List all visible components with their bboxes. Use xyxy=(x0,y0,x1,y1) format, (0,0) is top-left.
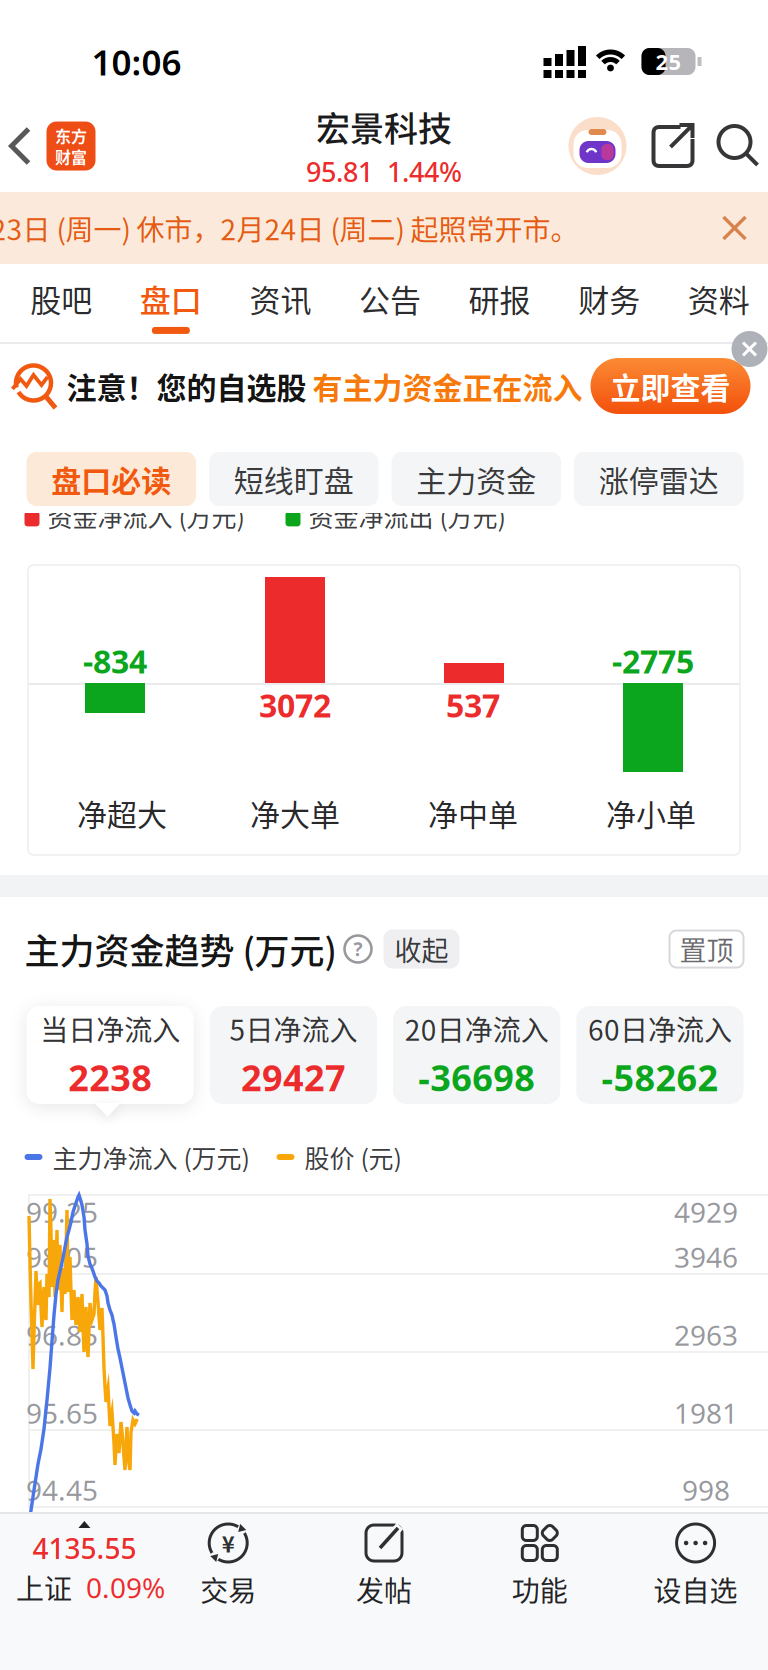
button[interactable]: ¥ xyxy=(150,1514,306,1609)
staticText: 主力资金 xyxy=(416,457,536,501)
button[interactable]: 4135.55 xyxy=(0,1514,150,1608)
staticText: -2775 xyxy=(612,639,694,683)
staticText: 主力净流入 (万元) xyxy=(52,1139,249,1175)
button[interactable]: 20日净流入 xyxy=(393,1006,560,1104)
staticText: 2238 xyxy=(68,1053,152,1102)
staticText: 1.44% xyxy=(387,153,462,190)
staticText: 宏景科技 xyxy=(316,102,452,151)
staticText: 4929 xyxy=(674,1193,738,1231)
staticText: 资金净流出 (万元) xyxy=(308,498,505,534)
staticText: 注意！您的自选股 xyxy=(66,364,306,408)
button[interactable]: 股吧 xyxy=(6,276,116,334)
button[interactable]: 发帖 xyxy=(306,1514,462,1609)
button[interactable]: 功能 xyxy=(462,1514,618,1609)
button[interactable]: 东方财富 xyxy=(34,121,95,170)
button[interactable]: 资讯 xyxy=(226,276,335,334)
staticText: 盘口必读 xyxy=(51,457,171,501)
staticText: 95.81 xyxy=(306,153,373,190)
staticText: 股价 (元) xyxy=(304,1139,401,1175)
staticText: 25 xyxy=(655,46,681,76)
button[interactable]: 关闭公告 xyxy=(723,217,768,239)
staticText: 5日净流入 xyxy=(229,1008,357,1049)
button[interactable]: 短线盯盘 xyxy=(209,452,378,506)
staticText: 收起 xyxy=(394,929,448,969)
staticText: 净超大 xyxy=(77,791,167,835)
button[interactable]: Search xyxy=(695,123,768,169)
staticText: 98.05 xyxy=(26,1238,98,1276)
button[interactable]: 置顶 xyxy=(669,930,768,967)
button[interactable]: 公告 xyxy=(335,276,445,334)
staticText: 公告 xyxy=(359,276,421,321)
staticText: 净小单 xyxy=(606,791,696,835)
staticText: 3072 xyxy=(259,683,331,727)
staticText: ¥ xyxy=(222,1527,235,1559)
staticText: 净大单 xyxy=(250,791,340,835)
staticText: 99.25 xyxy=(26,1193,98,1231)
staticText: ? xyxy=(353,936,362,962)
button[interactable]: 资料 xyxy=(664,276,768,334)
button[interactable]: 主力资金 xyxy=(391,452,561,506)
staticText: 60日净流入 xyxy=(588,1008,732,1049)
button[interactable]: 当日净流入 xyxy=(26,1006,194,1104)
button[interactable]: 财务 xyxy=(554,276,664,334)
button[interactable]: 说明 xyxy=(336,935,371,962)
staticText: 537 xyxy=(446,683,500,727)
button[interactable]: 设自选 xyxy=(618,1514,768,1609)
button[interactable]: 立即查看 xyxy=(590,358,768,414)
staticText: -58262 xyxy=(601,1053,718,1102)
button[interactable]: 盘口 xyxy=(116,276,226,334)
staticText: 当日净流入 xyxy=(40,1008,180,1049)
staticText: 95.65 xyxy=(26,1394,98,1432)
staticText: 2963 xyxy=(674,1316,738,1354)
button[interactable]: 研报 xyxy=(445,276,554,334)
staticText: 发帖 xyxy=(356,1569,412,1609)
staticText: 净中单 xyxy=(428,791,518,835)
staticText: 1981 xyxy=(674,1394,738,1432)
staticText: 立即查看 xyxy=(610,364,730,408)
staticText: 资讯 xyxy=(249,276,311,321)
button[interactable]: 涨停雷达 xyxy=(574,452,743,506)
staticText: 涨停雷达 xyxy=(599,457,719,501)
staticText: 研报 xyxy=(469,276,531,321)
button[interactable]: 5日净流入 xyxy=(210,1006,377,1104)
staticText: 3946 xyxy=(674,1238,738,1276)
staticText: 资金净流入 (万元) xyxy=(47,498,244,534)
staticText: -36698 xyxy=(418,1053,535,1102)
staticText: 96.85 xyxy=(26,1316,98,1354)
staticText: 股吧 xyxy=(30,276,92,321)
staticText: 资料 xyxy=(688,276,750,321)
button[interactable]: 盘口必读 xyxy=(26,452,196,506)
button[interactable]: 收起 xyxy=(371,929,459,968)
staticText: 东方 xyxy=(55,124,87,147)
staticText: 0.09% xyxy=(86,1568,165,1606)
button[interactable]: Share xyxy=(626,122,695,170)
staticText: 主力资金趋势 (万元) xyxy=(24,924,336,974)
staticText: 置顶 xyxy=(679,929,733,969)
staticText: -834 xyxy=(83,639,147,683)
button[interactable]: Back xyxy=(0,126,34,166)
staticText: 29427 xyxy=(241,1053,346,1102)
staticText: 94.45 xyxy=(26,1471,98,1509)
staticText: 设自选 xyxy=(654,1569,738,1609)
staticText: 财务 xyxy=(578,276,640,321)
staticText: 财富 xyxy=(55,145,87,168)
staticText: 功能 xyxy=(512,1569,568,1609)
staticText: 短线盯盘 xyxy=(234,457,354,501)
staticText: 10:06 xyxy=(91,38,181,86)
staticText: 有主力资金正在流入 xyxy=(312,364,582,408)
staticText: 上证 xyxy=(16,1567,72,1608)
staticText: 交易 xyxy=(200,1569,256,1609)
staticText: 998 xyxy=(682,1471,730,1509)
staticText: 盘口 xyxy=(140,276,202,321)
button[interactable]: 智能助手 xyxy=(568,117,626,175)
staticText: 23日 (周一) 休市，2月24日 (周二) 起照常开市。 xyxy=(0,208,578,248)
staticText: 4135.55 xyxy=(32,1529,136,1567)
button[interactable]: 60日净流入 xyxy=(576,1006,743,1104)
staticText: 20日净流入 xyxy=(405,1008,549,1049)
